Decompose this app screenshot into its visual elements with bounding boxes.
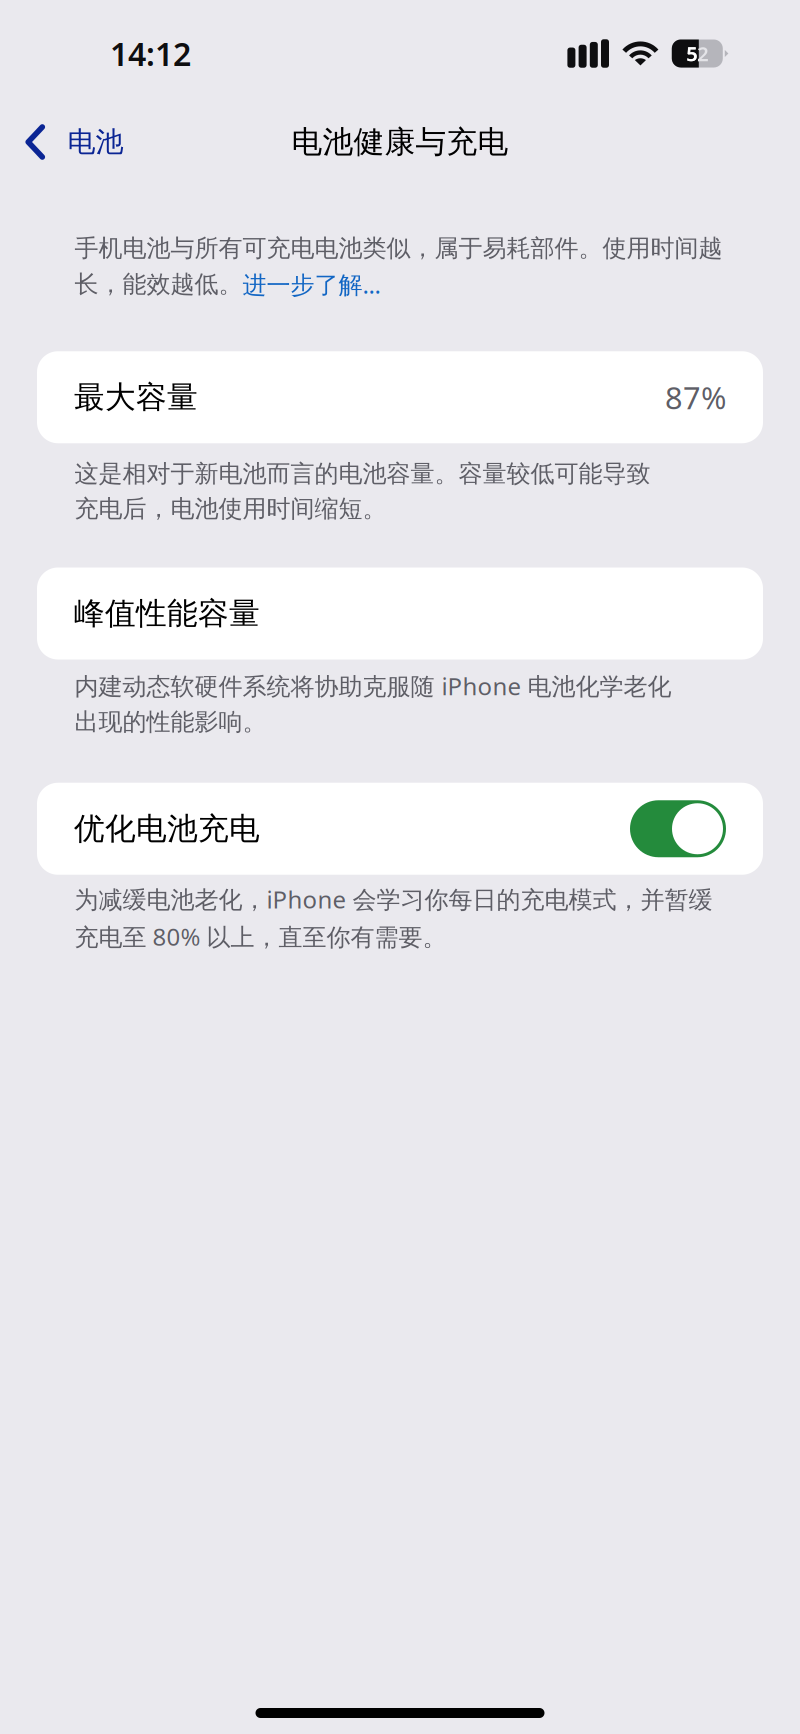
staticText: 进一步了解...	[242, 268, 380, 300]
button[interactable]: 优化电池充电	[37, 783, 763, 875]
staticText: 出现的性能影响。	[74, 707, 266, 737]
staticText: 手机电池与所有可充电电池类似，属于易耗部件。使用时间越	[74, 233, 722, 263]
staticText: 为减缓电池老化，iPhone 会学习你每日的充电模式，并暂缓	[74, 883, 712, 915]
staticText: 这是相对于新电池而言的电池容量。容量较低可能导致	[74, 459, 650, 489]
staticText: 87%	[665, 377, 726, 418]
staticText: 优化电池充电	[74, 810, 260, 848]
staticText: 峰值性能容量	[74, 595, 260, 632]
staticText: 电池	[67, 125, 123, 159]
staticText: 电池健康与充电	[291, 123, 508, 161]
staticText: 充电至 80% 以上，直至你有需要。	[74, 920, 446, 952]
staticText: 52	[686, 40, 708, 67]
button[interactable]: 最大容量	[37, 351, 763, 443]
staticText: 充电后，电池使用时间缩短。	[74, 494, 386, 523]
button[interactable]: 电池	[0, 113, 139, 171]
staticText: 14:12	[110, 32, 191, 75]
staticText: 长，能效越低。	[74, 270, 242, 299]
staticText: 52	[686, 40, 708, 67]
staticText: 内建动态软硬件系统将协助克服随 iPhone 电池化学老化	[74, 670, 671, 702]
button[interactable]: 峰值性能容量	[37, 567, 763, 659]
staticText: 最大容量	[74, 378, 198, 416]
